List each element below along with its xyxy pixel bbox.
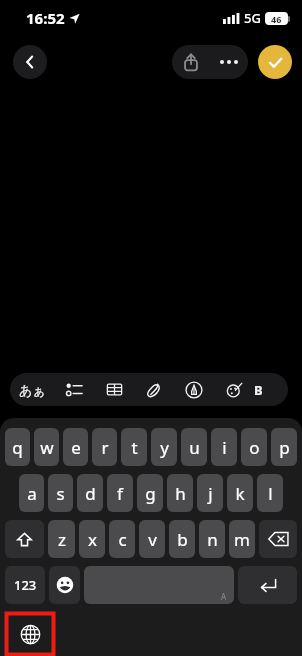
button[interactable]: q bbox=[5, 428, 30, 466]
staticText: d bbox=[85, 482, 96, 505]
button[interactable]: f bbox=[107, 474, 133, 512]
button[interactable]: a bbox=[19, 474, 44, 512]
button[interactable]: Markup bbox=[174, 373, 214, 406]
button[interactable]: Checklist bbox=[54, 373, 94, 406]
staticText: s bbox=[56, 482, 65, 505]
button[interactable]: w bbox=[34, 428, 59, 466]
button[interactable]: s bbox=[48, 474, 73, 512]
button[interactable]: e bbox=[63, 428, 88, 466]
button[interactable]: Table bbox=[94, 373, 134, 406]
button[interactable]: k bbox=[227, 474, 253, 512]
button[interactable]: b bbox=[169, 520, 195, 558]
staticText: v bbox=[148, 528, 157, 551]
staticText: n bbox=[207, 528, 218, 551]
button[interactable]: Backspace bbox=[259, 520, 297, 558]
staticText: k bbox=[235, 482, 245, 505]
staticText: 123 bbox=[14, 576, 37, 594]
staticText: a bbox=[27, 482, 37, 505]
button[interactable]: d bbox=[77, 474, 103, 512]
staticText: 46 bbox=[271, 13, 282, 25]
button[interactable]: Return bbox=[238, 566, 297, 604]
staticText: j bbox=[208, 482, 213, 505]
staticText: o bbox=[249, 436, 260, 459]
staticText: w bbox=[40, 436, 54, 459]
button[interactable]: h bbox=[167, 474, 193, 512]
button[interactable]: i bbox=[211, 428, 237, 466]
staticText: q bbox=[12, 436, 23, 459]
button[interactable]: j bbox=[197, 474, 223, 512]
staticText: g bbox=[145, 482, 156, 505]
button[interactable]: p bbox=[271, 428, 297, 466]
button[interactable]: Numbers bbox=[5, 566, 45, 604]
button[interactable]: Effects bbox=[214, 373, 254, 406]
staticText: l bbox=[268, 482, 273, 505]
staticText: b bbox=[177, 528, 188, 551]
staticText: h bbox=[175, 482, 186, 505]
button[interactable]: z bbox=[48, 520, 75, 558]
staticText: x bbox=[88, 528, 97, 551]
button[interactable]: o bbox=[241, 428, 267, 466]
staticText: p bbox=[279, 436, 290, 459]
button[interactable]: Text style bbox=[10, 373, 54, 406]
button[interactable]: c bbox=[109, 520, 135, 558]
button[interactable]: Attach bbox=[134, 373, 174, 406]
button[interactable]: Emoji bbox=[49, 566, 80, 604]
button[interactable]: u bbox=[181, 428, 207, 466]
button[interactable]: v bbox=[139, 520, 165, 558]
button[interactable]: l bbox=[257, 474, 283, 512]
staticText: u bbox=[189, 436, 200, 459]
button[interactable]: Back bbox=[13, 45, 47, 79]
button[interactable]: m bbox=[229, 520, 255, 558]
button[interactable]: x bbox=[79, 520, 105, 558]
button[interactable]: y bbox=[151, 428, 177, 466]
button[interactable]: n bbox=[199, 520, 225, 558]
staticText: r bbox=[101, 436, 109, 459]
staticText: A bbox=[221, 591, 227, 602]
staticText: m bbox=[234, 528, 250, 551]
staticText: 5G bbox=[244, 9, 261, 27]
staticText: c bbox=[118, 528, 127, 551]
staticText: B bbox=[254, 381, 263, 399]
button[interactable]: g bbox=[137, 474, 163, 512]
staticText: t bbox=[131, 436, 138, 459]
button[interactable]: Shift bbox=[5, 520, 44, 558]
button[interactable]: Bold bbox=[254, 373, 284, 406]
staticText: e bbox=[71, 436, 81, 459]
staticText: 16:52 bbox=[26, 8, 65, 28]
staticText: f bbox=[117, 482, 123, 505]
button[interactable]: r bbox=[92, 428, 117, 466]
staticText: i bbox=[222, 436, 227, 459]
staticText: あぁ bbox=[19, 382, 46, 398]
staticText: y bbox=[160, 436, 169, 459]
button[interactable]: Switch keyboard language bbox=[5, 612, 55, 656]
button[interactable]: Space bbox=[84, 566, 234, 604]
button[interactable]: Share bbox=[172, 45, 210, 79]
button[interactable]: More options bbox=[210, 45, 248, 79]
staticText: z bbox=[58, 528, 66, 551]
button[interactable]: t bbox=[121, 428, 147, 466]
button[interactable]: Done bbox=[258, 45, 292, 79]
